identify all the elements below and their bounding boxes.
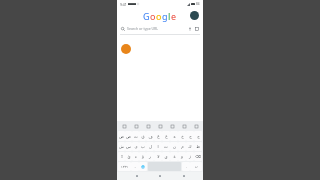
button[interactable]: ى bbox=[162, 152, 170, 161]
button[interactable]: Mic bbox=[118, 122, 130, 130]
staticText: ↵ bbox=[195, 165, 198, 169]
button[interactable]: ؤ bbox=[139, 152, 146, 161]
staticText: ، bbox=[134, 165, 136, 169]
button[interactable]: ؟١٢٣ bbox=[118, 162, 131, 171]
button[interactable]: Recents bbox=[180, 172, 188, 180]
button[interactable]: و bbox=[178, 152, 186, 161]
button[interactable]: ⌫ bbox=[194, 152, 202, 161]
staticText: ⌫ bbox=[195, 154, 201, 159]
button[interactable]: ن bbox=[170, 142, 178, 151]
button[interactable]: ء bbox=[132, 152, 139, 161]
button[interactable]: ا bbox=[154, 142, 162, 151]
staticText: خ bbox=[181, 134, 184, 139]
staticText: ة bbox=[173, 154, 176, 159]
staticText: ف bbox=[148, 134, 153, 139]
staticText: G bbox=[143, 10, 150, 22]
staticText: ؟١٢٣ bbox=[121, 165, 128, 169]
staticText: ا bbox=[157, 144, 159, 149]
button[interactable]: Google Account bbox=[190, 11, 199, 20]
button[interactable]: ث bbox=[132, 131, 139, 141]
button[interactable]: س bbox=[125, 142, 132, 151]
staticText: ى bbox=[164, 154, 168, 159]
staticText: ط bbox=[196, 144, 200, 149]
button[interactable]: خ bbox=[178, 131, 186, 141]
staticText: س bbox=[126, 144, 131, 149]
button[interactable]: ، bbox=[131, 162, 139, 171]
staticText: ر bbox=[149, 154, 151, 159]
button[interactable]: GIF bbox=[166, 122, 178, 130]
button[interactable]: ه bbox=[170, 131, 178, 141]
staticText: ؤ bbox=[142, 154, 144, 159]
button[interactable]: ص bbox=[125, 131, 132, 141]
staticText: ي bbox=[134, 144, 138, 149]
staticText: o bbox=[156, 10, 162, 22]
button[interactable]: ك bbox=[186, 142, 194, 151]
button[interactable]: ف bbox=[146, 131, 154, 141]
button[interactable]: ⇧ bbox=[118, 152, 125, 161]
button[interactable]: غ bbox=[154, 131, 162, 141]
staticText: ل bbox=[149, 144, 152, 149]
button[interactable]: ل bbox=[146, 142, 154, 151]
button[interactable]: ح bbox=[186, 131, 194, 141]
staticText: 9:41 bbox=[120, 2, 127, 7]
button[interactable]: ج bbox=[194, 131, 202, 141]
button[interactable]: Google Lens bbox=[195, 27, 199, 31]
staticText: Search or type URL bbox=[127, 26, 159, 31]
button[interactable]: ب bbox=[139, 142, 146, 151]
staticText: ن bbox=[173, 144, 176, 149]
button[interactable]: Settings bbox=[178, 122, 190, 130]
staticText: ز bbox=[189, 154, 191, 159]
staticText: ش bbox=[119, 144, 124, 149]
button[interactable]: م bbox=[178, 142, 186, 151]
button[interactable]: Back bbox=[133, 172, 141, 180]
staticText: . bbox=[186, 165, 187, 169]
button[interactable]: Expand bbox=[190, 122, 202, 130]
staticText: ء bbox=[135, 154, 137, 159]
button[interactable]: ق bbox=[139, 131, 146, 141]
button[interactable]: Search or type URL bbox=[121, 23, 199, 34]
staticText: م bbox=[181, 144, 184, 149]
staticText: ⇧ bbox=[120, 154, 124, 159]
button[interactable]: ش bbox=[118, 142, 125, 151]
staticText: ه bbox=[173, 134, 176, 139]
staticText: غ bbox=[157, 134, 160, 139]
button[interactable]: ة bbox=[170, 152, 178, 161]
staticText: 🌐 bbox=[141, 165, 145, 169]
button[interactable]: Clipboard bbox=[130, 122, 142, 130]
staticText: ئ bbox=[127, 154, 131, 159]
button[interactable]: ز bbox=[186, 152, 194, 161]
staticText: ك bbox=[188, 144, 192, 149]
button[interactable]: ع bbox=[162, 131, 170, 141]
button[interactable]: Loading indicator bbox=[121, 44, 131, 54]
staticText: لا bbox=[157, 154, 160, 159]
button[interactable]: ت bbox=[162, 142, 170, 151]
staticText: ق bbox=[141, 134, 145, 139]
staticText: l bbox=[168, 10, 171, 22]
staticText: ض bbox=[119, 134, 124, 139]
staticText: e bbox=[171, 10, 177, 22]
button[interactable]: ر bbox=[146, 152, 154, 161]
staticText: ث bbox=[134, 134, 138, 139]
button[interactable]: Voice search bbox=[188, 27, 192, 31]
staticText: ب bbox=[141, 144, 145, 149]
button[interactable]: ↵ bbox=[190, 162, 202, 171]
button[interactable]: ي bbox=[132, 142, 139, 151]
button[interactable]: 🌐 bbox=[139, 162, 147, 171]
staticText: و bbox=[181, 154, 183, 159]
button[interactable]: ض bbox=[118, 131, 125, 141]
staticText: o bbox=[150, 10, 156, 22]
button[interactable]: ط bbox=[194, 142, 202, 151]
staticText: g bbox=[162, 10, 168, 22]
button[interactable]: Keyboard bbox=[142, 122, 154, 130]
button[interactable]: Emoji bbox=[154, 122, 166, 130]
staticText: ج bbox=[197, 134, 200, 139]
staticText: ت bbox=[164, 144, 168, 149]
button[interactable]: لا bbox=[154, 152, 162, 161]
staticText: ص bbox=[126, 134, 131, 139]
button[interactable]: Home bbox=[156, 172, 164, 180]
staticText: ح bbox=[189, 134, 192, 139]
button[interactable]: ئ bbox=[125, 152, 132, 161]
staticText: 84 bbox=[196, 2, 200, 6]
